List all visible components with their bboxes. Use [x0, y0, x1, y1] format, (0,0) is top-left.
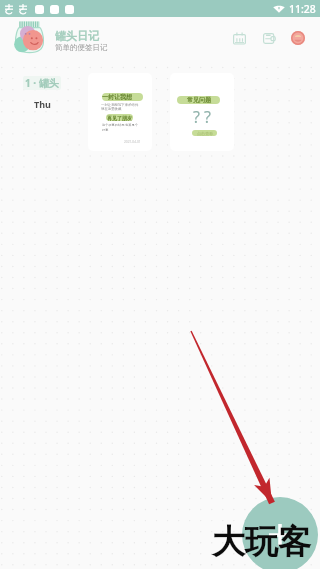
- staticText: 一封让我想写下来的信件 放在这里收藏: [101, 103, 139, 111]
- staticText: 大玩客: [212, 521, 311, 563]
- button[interactable]: Calendar: [226, 25, 252, 51]
- staticText: 一封让我想起…: [102, 93, 143, 101]
- staticText: Thu: [34, 98, 51, 110]
- staticText: 简单的便签日记: [55, 43, 108, 52]
- staticText: ? ?: [193, 106, 212, 128]
- button[interactable]: Notes: [256, 25, 282, 51]
- staticText: 点击查看: [197, 131, 213, 136]
- staticText: 常见问题: [187, 96, 211, 104]
- button[interactable]: Add note: [242, 497, 318, 569]
- staticText: 11:28: [289, 2, 316, 16]
- button[interactable]: 一封让我想起…: [88, 73, 152, 151]
- staticText: 这个故事的结局 也算是个 好事: [102, 123, 138, 132]
- staticText: 2021-04-01: [124, 140, 141, 144]
- button[interactable]: 常见问题: [170, 73, 234, 151]
- staticText: 再见了朋友: [107, 115, 132, 121]
- staticText: 1 · 罐头: [25, 76, 59, 90]
- staticText: 罐头日记: [55, 29, 99, 43]
- button[interactable]: Profile: [285, 25, 311, 51]
